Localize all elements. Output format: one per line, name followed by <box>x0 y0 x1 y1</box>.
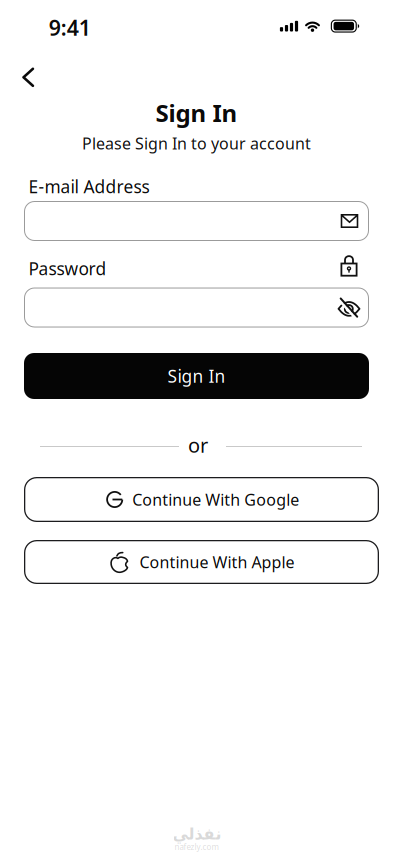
staticText: 9:41 <box>49 13 91 42</box>
staticText: nafezly.com <box>174 842 218 852</box>
staticText: Continue With Google <box>132 489 299 510</box>
button[interactable]: Continue With Apple <box>24 540 379 584</box>
staticText: نفذلي <box>172 825 221 843</box>
button[interactable]: Back <box>16 66 40 90</box>
staticText: Password <box>28 257 106 280</box>
staticText: Sign In <box>167 364 225 387</box>
staticText: Continue With Apple <box>139 551 294 573</box>
button[interactable]: Show password <box>336 296 360 318</box>
button[interactable]: Password <box>24 287 369 327</box>
staticText: Sign In <box>155 97 237 129</box>
button[interactable]: E-mail Address <box>24 201 369 241</box>
staticText: Please Sign In to your account <box>82 133 311 154</box>
button[interactable]: Sign In <box>24 353 369 399</box>
staticText: or <box>188 432 208 458</box>
button[interactable]: Continue With Google <box>24 477 379 522</box>
staticText: E-mail Address <box>28 175 149 198</box>
